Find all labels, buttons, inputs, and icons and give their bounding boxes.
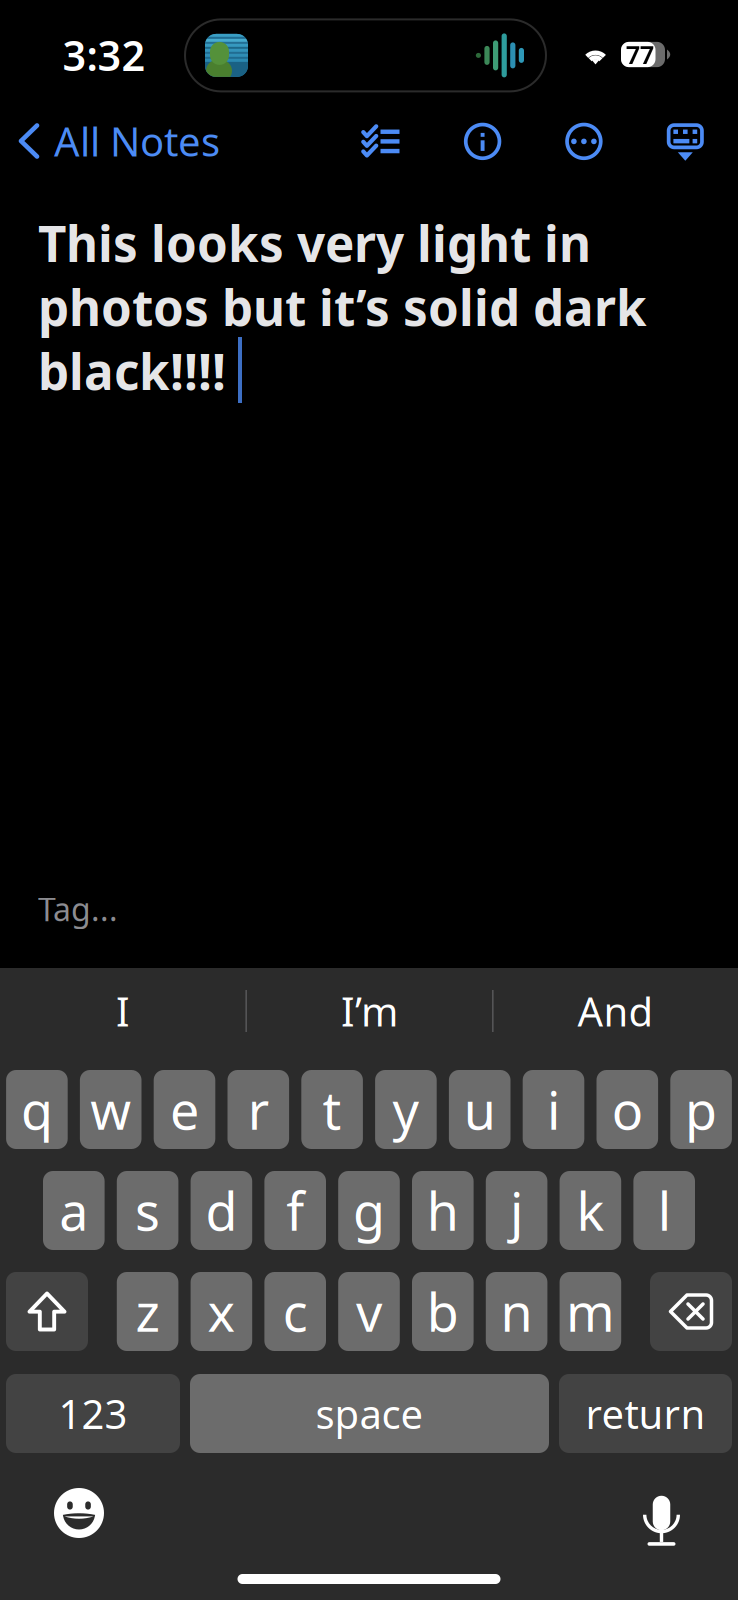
button[interactable]: i <box>523 1070 584 1149</box>
button[interactable]: And <box>494 968 738 1054</box>
staticText: y <box>392 1075 419 1144</box>
button[interactable]: d <box>191 1171 252 1250</box>
button[interactable]: j <box>486 1171 547 1250</box>
button[interactable]: Emoji Keyboard <box>40 1474 118 1552</box>
button[interactable]: return <box>559 1374 732 1453</box>
staticText: j <box>510 1176 523 1245</box>
button[interactable]: l <box>633 1171 695 1250</box>
staticText: r <box>248 1075 269 1144</box>
button[interactable]: All Notes <box>0 108 234 174</box>
button[interactable]: Delete <box>650 1272 732 1351</box>
staticText: p <box>685 1075 717 1144</box>
button[interactable]: Dictation <box>627 1474 696 1552</box>
staticText: q <box>21 1075 53 1144</box>
staticText: h <box>427 1176 459 1245</box>
button[interactable]: space <box>190 1374 549 1453</box>
staticText: g <box>353 1176 385 1245</box>
button[interactable]: 123 <box>6 1374 180 1453</box>
staticText: All Notes <box>54 114 220 167</box>
staticText: I’m <box>341 984 398 1037</box>
button[interactable]: y <box>375 1070 437 1149</box>
button[interactable]: z <box>117 1272 178 1351</box>
staticText: v <box>356 1277 382 1346</box>
staticText: z <box>136 1277 160 1346</box>
staticText: l <box>658 1176 671 1245</box>
staticText: d <box>205 1176 237 1245</box>
button[interactable]: w <box>80 1070 141 1149</box>
staticText: Tag... <box>38 887 118 930</box>
staticText: x <box>207 1277 235 1346</box>
staticText: m <box>566 1277 615 1346</box>
button[interactable]: a <box>43 1171 105 1250</box>
staticText: i <box>547 1075 560 1144</box>
staticText: w <box>90 1075 131 1144</box>
button[interactable]: k <box>560 1171 621 1250</box>
button[interactable]: e <box>154 1070 215 1149</box>
staticText: return <box>585 1387 705 1440</box>
button[interactable]: g <box>338 1171 400 1250</box>
button[interactable]: Note Info <box>452 110 514 172</box>
staticText: t <box>323 1075 342 1144</box>
button[interactable]: s <box>117 1171 178 1250</box>
button[interactable]: q <box>6 1070 68 1149</box>
button[interactable]: I <box>0 968 245 1054</box>
staticText: s <box>135 1176 160 1245</box>
staticText: o <box>612 1075 643 1144</box>
staticText: f <box>286 1176 304 1245</box>
staticText: space <box>315 1387 423 1440</box>
button[interactable]: n <box>486 1272 547 1351</box>
button[interactable]: x <box>191 1272 252 1351</box>
button[interactable]: t <box>301 1070 363 1149</box>
staticText: k <box>576 1176 604 1245</box>
staticText: n <box>501 1277 533 1346</box>
staticText: I <box>116 984 130 1037</box>
button[interactable]: c <box>264 1272 326 1351</box>
button[interactable]: Checklist <box>348 108 414 174</box>
button[interactable]: f <box>264 1171 326 1250</box>
staticText: a <box>59 1176 88 1245</box>
staticText: b <box>427 1277 459 1346</box>
staticText: 77 <box>626 38 654 71</box>
button[interactable]: More <box>553 110 615 172</box>
staticText: And <box>578 984 654 1037</box>
staticText: 123 <box>58 1387 127 1440</box>
button[interactable]: Shift <box>6 1272 88 1351</box>
button[interactable]: p <box>670 1070 732 1149</box>
staticText: c <box>283 1277 308 1346</box>
staticText: e <box>170 1075 199 1144</box>
button[interactable]: I’m <box>247 968 492 1054</box>
staticText: u <box>464 1075 496 1144</box>
button[interactable]: o <box>596 1070 658 1149</box>
button[interactable]: h <box>412 1171 474 1250</box>
button[interactable]: b <box>412 1272 474 1351</box>
button[interactable]: Hide Keyboard <box>654 111 716 173</box>
staticText: This looks very light in photos but it’s… <box>38 210 647 403</box>
button[interactable]: r <box>227 1070 289 1149</box>
button[interactable]: u <box>449 1070 510 1149</box>
staticText: 3:32 <box>62 28 145 82</box>
button[interactable]: m <box>560 1272 621 1351</box>
button[interactable]: v <box>338 1272 400 1351</box>
